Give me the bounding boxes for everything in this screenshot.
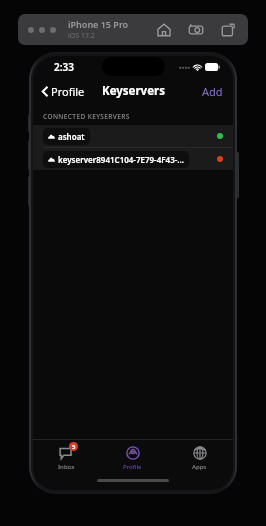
staticText: Profile <box>51 84 85 99</box>
staticText: Inbox <box>58 463 75 471</box>
button[interactable]: Record screen <box>220 22 236 38</box>
button[interactable]: Screenshot <box>188 22 204 38</box>
button[interactable]: Profile <box>39 82 88 101</box>
staticText: Profile <box>123 463 142 471</box>
staticText: ashoat <box>58 131 85 142</box>
button[interactable]: Home <box>156 22 172 38</box>
button[interactable]: Apps <box>166 440 233 476</box>
button[interactable]: keyserver8941C104-7E79-4F43-... <box>33 148 233 170</box>
staticText: Apps <box>192 463 207 471</box>
staticText: CONNECTED KEYSERVERS <box>43 112 130 121</box>
button[interactable]: 5 <box>33 440 99 476</box>
staticText: keyserver8941C104-7E79-4F43-... <box>58 154 184 165</box>
button[interactable]: ashoat <box>33 125 233 147</box>
staticText: iPhone 15 Pro <box>68 18 129 30</box>
staticText: 5 <box>72 443 76 451</box>
button[interactable]: Add <box>200 82 225 101</box>
button[interactable]: Profile <box>99 440 166 476</box>
staticText: iOS 17.2 <box>68 31 95 41</box>
staticText: Keyservers <box>102 83 165 99</box>
staticText: 2:33 <box>54 60 74 74</box>
